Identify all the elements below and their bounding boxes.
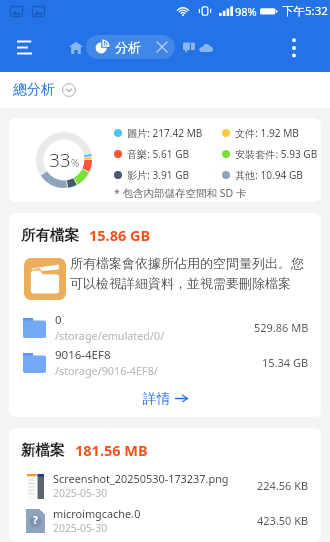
staticText: 所有檔案 xyxy=(21,226,79,244)
staticText: 音樂: 5.61 GB xyxy=(127,147,190,161)
button[interactable]: More options xyxy=(280,22,308,72)
staticText: 新檔案 xyxy=(21,441,65,459)
staticText: microimgcache.0 xyxy=(53,506,141,521)
button[interactable]: Messages xyxy=(177,22,200,72)
staticText: /storage/9016-4EF8/ xyxy=(55,363,158,378)
button[interactable]: 0 xyxy=(9,310,321,345)
button[interactable]: ? xyxy=(9,503,321,538)
button[interactable]: Cloud xyxy=(194,22,218,72)
staticText: * 包含內部儲存空間和 SD 卡 xyxy=(114,186,247,200)
staticText: 圖片: 217.42 MB xyxy=(127,126,203,140)
staticText: 安裝套件: 5.93 GB xyxy=(235,147,318,161)
button[interactable]: Home xyxy=(63,22,89,72)
staticText: 影片: 3.91 GB xyxy=(127,168,190,182)
staticText: 2025-05-30 xyxy=(53,521,108,535)
button[interactable]: Menu xyxy=(8,22,40,72)
staticText: 181.56 MB xyxy=(75,440,148,460)
staticText: 224.56 KB xyxy=(257,478,309,493)
staticText: 總分析 xyxy=(13,81,55,99)
staticText: 下午5:32 xyxy=(282,3,328,19)
staticText: 其他: 10.94 GB xyxy=(235,168,303,182)
staticText: 9016-4EF8 xyxy=(55,347,111,363)
button[interactable]: Close tab xyxy=(151,35,173,59)
staticText: 0 xyxy=(55,312,62,328)
staticText: 15.86 GB xyxy=(89,225,151,245)
staticText: 15.34 GB xyxy=(262,355,309,370)
staticText: 所有檔案會依據所佔用的空間量列出。您可以檢視詳細資料，並視需要刪除檔案 xyxy=(70,255,314,292)
staticText: 529.86 MB xyxy=(254,320,309,335)
button[interactable]: 分析 xyxy=(86,35,175,59)
button[interactable]: Screenshot_20250530-173237.png xyxy=(9,468,321,503)
button[interactable]: 詳情 xyxy=(133,387,198,410)
staticText: 文件: 1.92 MB xyxy=(235,126,299,140)
staticText: Screenshot_20250530-173237.png xyxy=(53,471,229,486)
staticText: 98% xyxy=(235,4,257,19)
staticText: 詳情 xyxy=(143,390,170,407)
button[interactable]: 總分析 xyxy=(11,77,78,103)
staticText: 分析 xyxy=(115,39,141,55)
staticText: 2025-05-30 xyxy=(53,486,108,500)
staticText: /storage/emulated/0/ xyxy=(55,328,165,343)
staticText: 33 xyxy=(49,147,71,173)
button[interactable]: 9016-4EF8 xyxy=(9,345,321,380)
staticText: ? xyxy=(33,513,38,527)
staticText: 423.50 KB xyxy=(257,513,309,528)
staticText: % xyxy=(71,156,80,170)
